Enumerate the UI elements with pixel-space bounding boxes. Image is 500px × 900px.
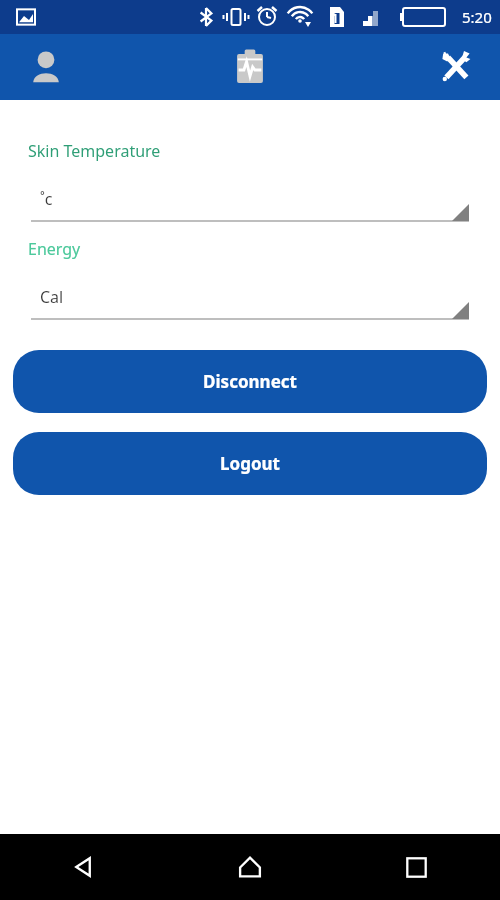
button[interactable]: Disconnect xyxy=(13,350,487,413)
button[interactable]: ˚c xyxy=(31,186,469,224)
button[interactable]: Back xyxy=(0,834,166,900)
staticText: 5:20 xyxy=(462,7,492,27)
button[interactable]: Cal xyxy=(31,284,469,322)
button[interactable]: Home xyxy=(166,834,333,900)
button[interactable]: Profile xyxy=(0,34,166,100)
button[interactable]: Recent apps xyxy=(333,834,500,900)
staticText: Skin Temperature xyxy=(28,140,161,162)
button[interactable]: Records xyxy=(166,34,333,100)
staticText: Logout xyxy=(220,452,280,475)
staticText: Energy xyxy=(28,238,81,260)
button[interactable]: Logout xyxy=(13,432,487,495)
button[interactable]: Settings xyxy=(333,34,500,100)
staticText: Disconnect xyxy=(203,370,297,393)
staticText: Cal xyxy=(40,286,64,308)
staticText: ˚c xyxy=(40,188,53,210)
